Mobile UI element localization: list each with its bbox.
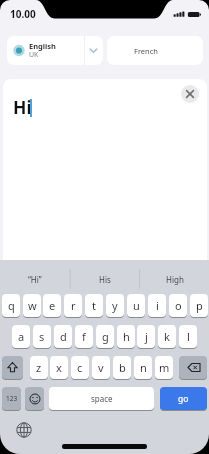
button[interactable]: “Hi” [0, 265, 69, 293]
staticText: e [49, 298, 56, 313]
button[interactable]: i [148, 294, 166, 317]
button[interactable]: His [70, 265, 139, 293]
staticText: a [18, 329, 25, 344]
button[interactable] [107, 36, 203, 65]
button[interactable]: q [2, 294, 20, 317]
button[interactable]: 123 [2, 387, 21, 410]
staticText: “Hi” [28, 274, 42, 285]
staticText: French [134, 46, 158, 56]
staticText: u [133, 298, 140, 313]
button[interactable]: x [50, 356, 68, 379]
button[interactable]: z [30, 356, 48, 379]
staticText: v [98, 360, 104, 375]
staticText: g [102, 329, 109, 344]
button[interactable]: o [169, 294, 187, 317]
staticText: z [36, 360, 42, 375]
staticText: space [91, 393, 113, 404]
staticText: 10.00 [10, 7, 36, 21]
staticText: n [140, 360, 147, 375]
staticText: s [39, 329, 45, 344]
button[interactable] [2, 356, 23, 379]
staticText: 123 [6, 394, 18, 403]
staticText: b [119, 360, 126, 375]
staticText: p [196, 298, 203, 313]
staticText: w [28, 298, 37, 313]
button[interactable]: k [158, 325, 176, 348]
staticText: go [178, 393, 189, 405]
button[interactable]: t [85, 294, 103, 317]
button[interactable]: y [106, 294, 124, 317]
button[interactable]: n [134, 356, 152, 379]
button[interactable]: g [96, 325, 114, 348]
button[interactable]: space [49, 387, 154, 410]
staticText: x [56, 360, 62, 375]
button[interactable]: u [127, 294, 145, 317]
button[interactable]: v [92, 356, 110, 379]
staticText: o [175, 298, 182, 313]
button[interactable]: s [33, 325, 51, 348]
staticText: Hi [13, 95, 32, 119]
button[interactable] [179, 356, 207, 379]
button[interactable]: High [140, 265, 209, 293]
staticText: t [92, 298, 96, 313]
staticText: c [77, 360, 83, 375]
staticText: m [159, 360, 170, 375]
button[interactable]: f [75, 325, 93, 348]
staticText: y [112, 298, 118, 313]
button[interactable] [16, 422, 32, 438]
staticText: k [164, 329, 170, 344]
button[interactable]: w [23, 294, 41, 317]
button[interactable]: m [155, 356, 173, 379]
staticText: f [82, 329, 86, 344]
button[interactable]: go [160, 387, 207, 410]
button[interactable]: b [113, 356, 131, 379]
staticText: English [29, 41, 56, 51]
button[interactable]: c [71, 356, 89, 379]
staticText: UK [29, 50, 39, 60]
staticText: r [71, 298, 76, 313]
staticText: High [166, 274, 184, 285]
button[interactable]: j [137, 325, 155, 348]
button[interactable] [7, 36, 103, 65]
button[interactable]: d [54, 325, 72, 348]
button[interactable]: a [12, 325, 30, 348]
staticText: l [187, 329, 190, 344]
button[interactable]: l [179, 325, 197, 348]
staticText: His [99, 274, 111, 285]
staticText: d [60, 329, 67, 344]
button[interactable]: e [43, 294, 61, 317]
staticText: i [156, 298, 159, 313]
button[interactable]: p [190, 294, 208, 317]
button[interactable]: r [64, 294, 82, 317]
staticText: q [8, 298, 15, 313]
staticText: h [123, 329, 130, 344]
staticText: j [145, 329, 148, 344]
button[interactable] [181, 85, 199, 103]
button[interactable]: h [117, 325, 135, 348]
button[interactable] [25, 387, 44, 410]
